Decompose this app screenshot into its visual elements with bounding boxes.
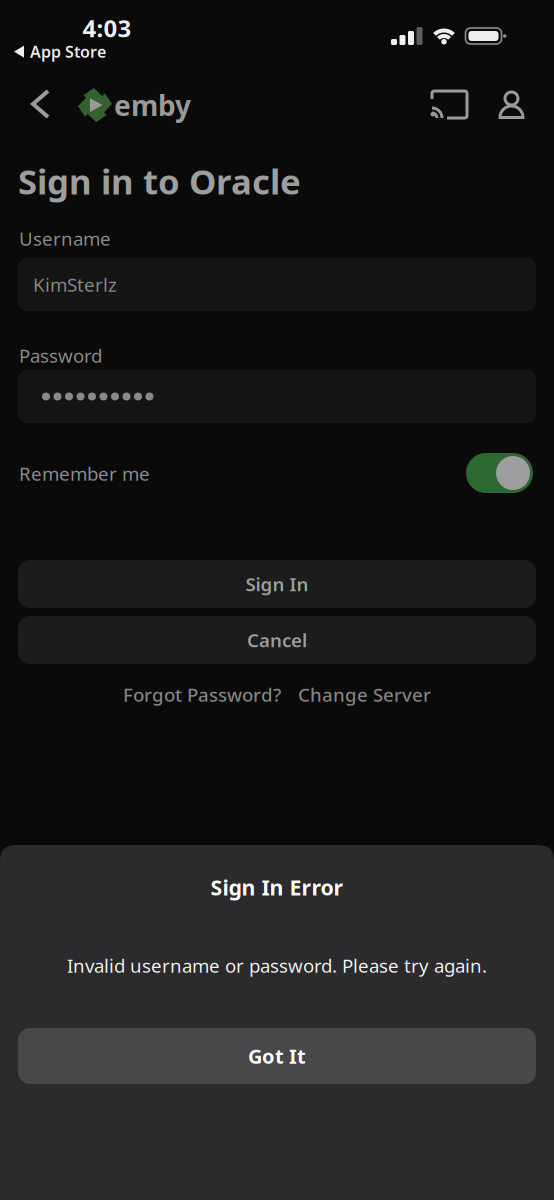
staticText: Got It xyxy=(248,1043,306,1069)
button[interactable]: Cancel xyxy=(18,616,536,664)
button[interactable]: Back xyxy=(25,83,56,125)
staticText: Change Server xyxy=(298,682,431,707)
button[interactable]: User profile xyxy=(494,86,529,123)
button[interactable]: Cast xyxy=(426,85,473,124)
button[interactable]: Change Server xyxy=(298,682,431,707)
staticText: Invalid username or password. Please try… xyxy=(67,953,487,978)
button[interactable]: Username field xyxy=(18,258,536,311)
staticText: Password xyxy=(19,343,102,368)
button[interactable]: Emby home xyxy=(78,86,191,124)
staticText: KimSterlz xyxy=(33,272,117,297)
staticText: Sign In xyxy=(245,572,308,596)
staticText: Remember me xyxy=(19,461,150,486)
staticText: Cancel xyxy=(247,628,307,652)
button[interactable]: Sign In xyxy=(18,560,536,608)
button[interactable]: Forgot Password? xyxy=(123,682,281,707)
staticText: Username xyxy=(19,226,111,251)
button[interactable]: Back to App Store xyxy=(14,41,106,62)
staticText: Sign in to Oracle xyxy=(18,158,301,204)
staticText: 4:03 xyxy=(82,12,131,44)
staticText: emby xyxy=(114,86,191,124)
staticText: Sign In Error xyxy=(210,873,343,901)
staticText: Forgot Password? xyxy=(123,682,281,707)
button[interactable]: Password field xyxy=(18,370,536,423)
button[interactable]: Got It xyxy=(18,1028,536,1084)
button[interactable]: Remember me xyxy=(466,453,533,493)
staticText: App Store xyxy=(30,41,106,62)
